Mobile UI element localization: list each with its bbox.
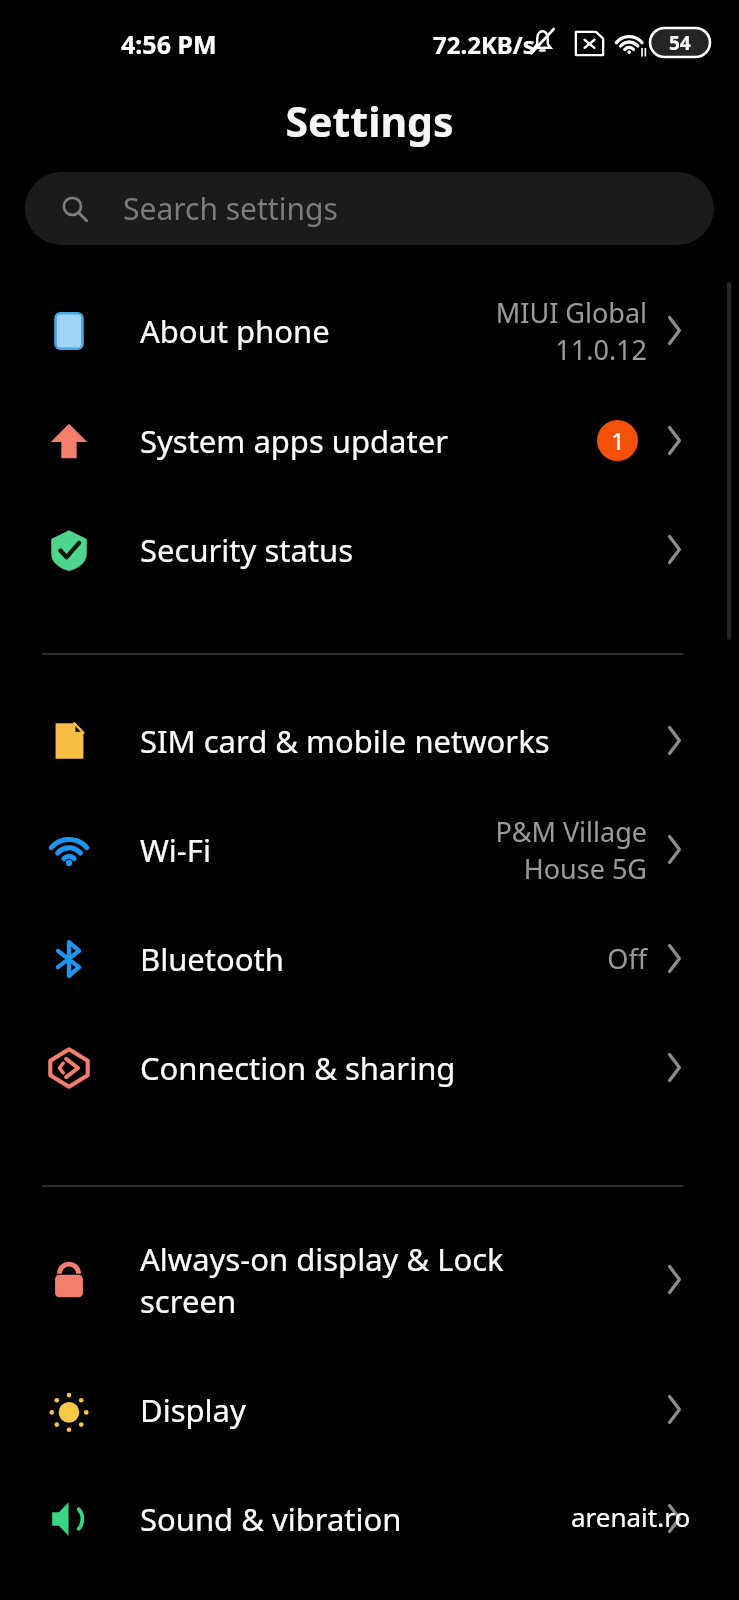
staticText: SIM card & mobile networks: [140, 720, 550, 762]
staticText: System apps updater: [140, 420, 448, 462]
other: Open About phone: [660, 276, 688, 385]
button[interactable]: Display: [0, 1355, 739, 1464]
button[interactable]: Search settings: [25, 172, 714, 245]
other: Open Connection & sharing: [660, 1013, 688, 1122]
staticText: Connection & sharing: [140, 1047, 456, 1089]
staticText: Search settings: [123, 188, 338, 229]
other: Open Display: [660, 1355, 688, 1464]
button[interactable]: Security status: [0, 495, 739, 604]
button[interactable]: Connection & sharing: [0, 1013, 739, 1122]
staticText: P&M Village: [495, 813, 647, 850]
staticText: Wi-Fi: [140, 829, 211, 871]
button[interactable]: Wi-Fi: [0, 795, 739, 904]
other: Open SIM card & mobile networks: [660, 686, 688, 795]
other: Open Security status: [660, 495, 688, 604]
other: Open System apps updater: [660, 386, 688, 495]
other: Open Bluetooth: [660, 904, 688, 1013]
button[interactable]: System apps updater: [0, 386, 739, 495]
staticText: Settings: [0, 93, 739, 149]
staticText: 54: [669, 30, 691, 56]
staticText: Display: [140, 1389, 246, 1431]
button[interactable]: Bluetooth: [0, 904, 739, 1013]
staticText: About phone: [140, 310, 330, 352]
other: Open Sound & vibration: [660, 1464, 688, 1573]
staticText: arenait.ro: [571, 1499, 691, 1534]
button[interactable]: SIM card & mobile networks: [0, 686, 739, 795]
button[interactable]: Sound & vibration: [0, 1464, 739, 1573]
staticText: 72.2KB/s: [433, 28, 535, 61]
staticText: Security status: [140, 529, 354, 571]
staticText: Off: [607, 940, 647, 977]
staticText: 4:56 PM: [121, 27, 217, 61]
staticText: Bluetooth: [140, 938, 284, 980]
staticText: 11.0.12: [555, 331, 647, 368]
other: Open Wi-Fi: [660, 795, 688, 904]
button[interactable]: Always-on display & Lock screen: [0, 1225, 739, 1334]
button[interactable]: About phone: [0, 276, 739, 385]
staticText: Always-on display & Lock screen: [140, 1238, 535, 1322]
other: Open Always-on display & Lock screen: [660, 1225, 688, 1334]
staticText: Sound & vibration: [140, 1498, 402, 1540]
staticText: House 5G: [523, 850, 647, 887]
staticText: 1: [611, 424, 625, 457]
staticText: MIUI Global: [495, 294, 647, 331]
